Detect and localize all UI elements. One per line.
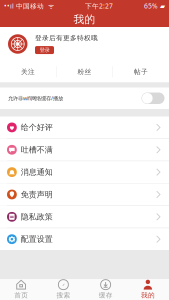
staticText: ••ıl 中国移动 ᯤ — [4, 2, 54, 10]
staticText: 我的 — [141, 291, 155, 299]
button[interactable]: 允许非wifi网络缓存播放 — [141, 92, 164, 104]
staticText: 搜索 — [56, 291, 70, 299]
button[interactable]: 关注 — [0, 61, 56, 82]
button[interactable]: 免责声明 — [0, 184, 169, 205]
staticText: 粉丝 — [77, 68, 91, 76]
button[interactable]: 首页 — [0, 279, 42, 300]
staticText: 关注 — [21, 68, 35, 76]
staticText: 免责声明 — [21, 190, 53, 199]
staticText: 登录 — [39, 47, 49, 53]
button[interactable]: 登录后有更多特权哦 — [0, 27, 169, 61]
staticText: 消息通知 — [21, 167, 53, 177]
button[interactable]: 隐私政策 — [0, 206, 169, 228]
button[interactable]: 搜索 — [42, 279, 84, 300]
staticText: 吐槽不满 — [21, 145, 53, 155]
button[interactable]: 吐槽不满 — [0, 139, 169, 161]
staticText: 帖子 — [134, 68, 148, 76]
button[interactable]: 配置设置 — [0, 228, 169, 250]
staticText: 登录后有更多特权哦 — [35, 34, 98, 42]
button[interactable]: 给个好评 — [0, 116, 169, 138]
staticText: 下午2:27 — [85, 2, 113, 10]
button[interactable]: 我的 — [127, 279, 169, 300]
staticText: 缓存 — [99, 291, 113, 299]
staticText: 配置设置 — [21, 234, 53, 244]
button[interactable]: 帖子 — [113, 61, 169, 82]
button[interactable]: 粉丝 — [56, 61, 112, 82]
staticText: 允许非wifi网络缓存/播放 — [8, 95, 63, 102]
button[interactable]: 缓存 — [84, 279, 127, 300]
staticText: 隐私政策 — [21, 212, 53, 222]
staticText: 给个好评 — [21, 122, 53, 132]
staticText: 我的 — [73, 13, 95, 26]
staticText: 65% ▰ — [144, 2, 165, 10]
button[interactable]: 消息通知 — [0, 161, 169, 183]
staticText: 首页 — [14, 291, 28, 299]
